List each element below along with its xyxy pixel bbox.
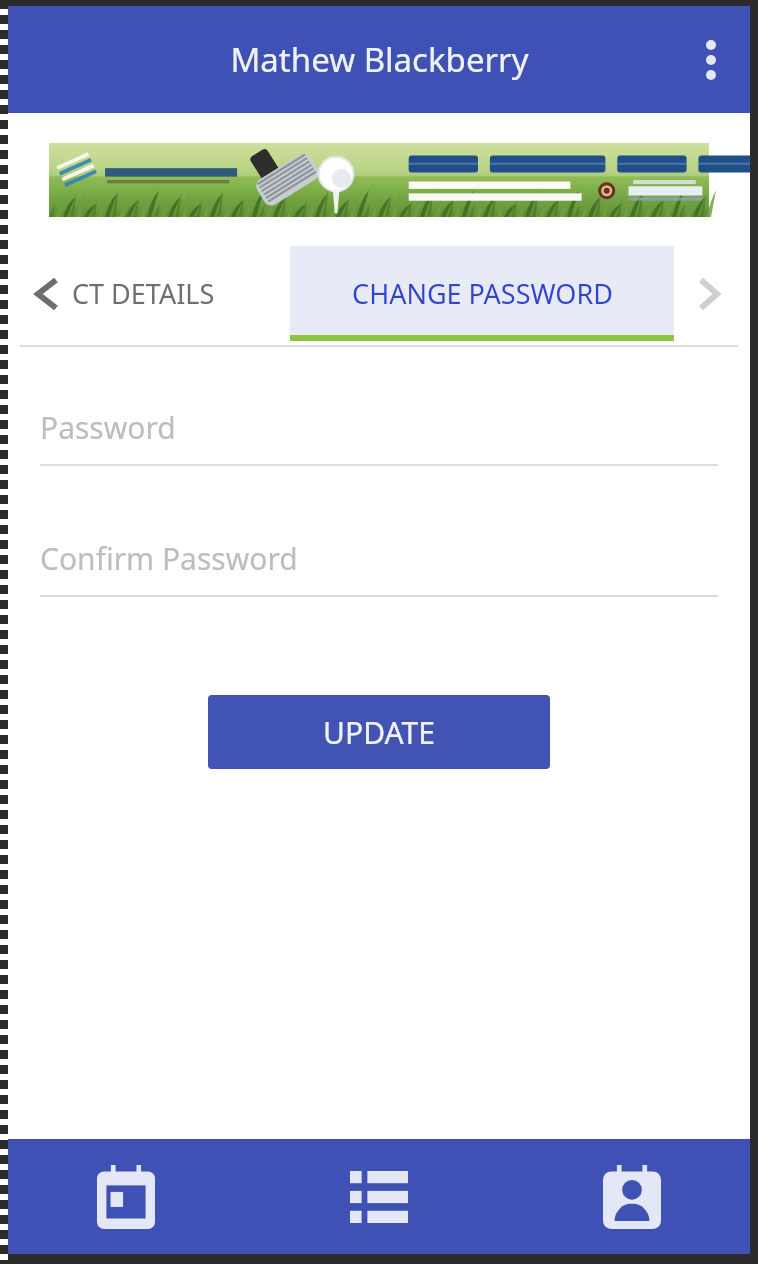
button[interactable]: Confirm Password [40,538,718,597]
button[interactable]: More options [684,33,738,87]
button[interactable]: Advertisement: 2015 Annual Golf Outing [49,143,709,217]
staticText: CHANGE PASSWORD [352,275,613,312]
button[interactable]: Calendar [0,1139,252,1254]
button[interactable]: Next tab [674,246,744,341]
staticText: Password [40,407,176,448]
button[interactable]: List [252,1139,505,1254]
staticText: Confirm Password [40,538,298,579]
staticText: Mathew Blackberry [230,37,529,82]
button[interactable]: Contacts [505,1139,758,1254]
button[interactable]: CHANGE PASSWORD [290,246,674,341]
staticText: CT DETAILS [72,275,215,312]
button[interactable]: Password [40,407,718,466]
staticText: UPDATE [323,712,435,753]
button[interactable]: UPDATE [208,695,550,769]
button[interactable]: CT DETAILS [20,246,290,341]
